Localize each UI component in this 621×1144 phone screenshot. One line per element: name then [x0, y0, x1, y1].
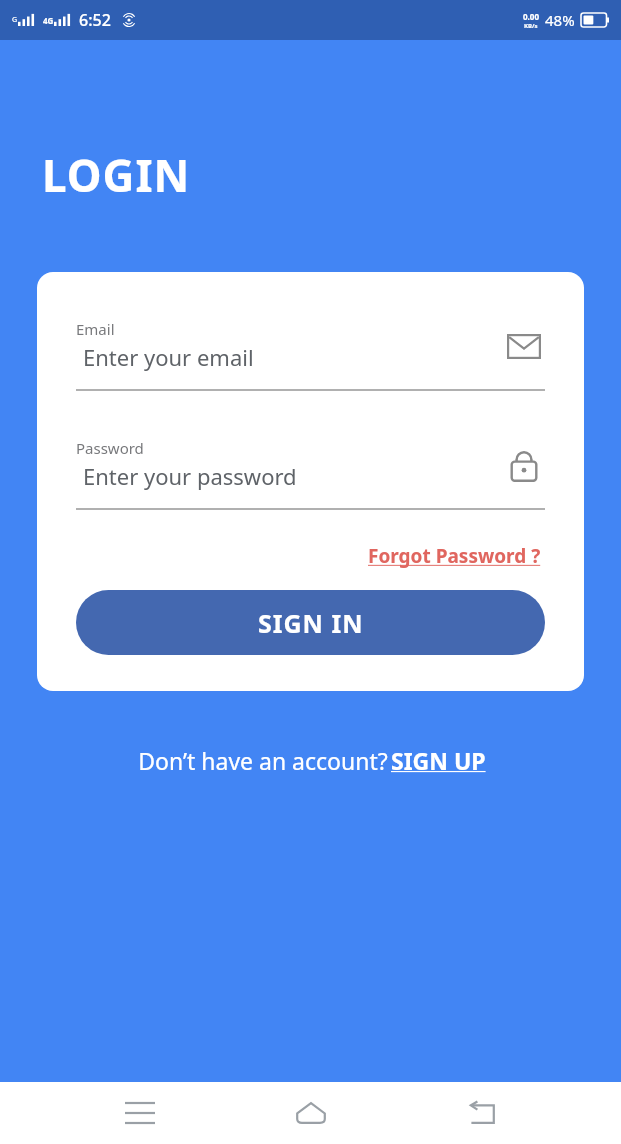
staticText: 6:52	[79, 9, 111, 31]
staticText: Enter your email	[83, 342, 254, 372]
button[interactable]: SIGN UP	[391, 745, 486, 776]
button[interactable]: Recent apps	[109, 1082, 171, 1144]
staticText: 4G	[43, 15, 54, 26]
staticText: Enter your password	[83, 461, 297, 491]
button[interactable]: Home	[280, 1082, 342, 1144]
button[interactable]: Forgot Password ?	[364, 539, 545, 573]
button[interactable]: Email	[76, 319, 545, 391]
button[interactable]: Password	[76, 438, 545, 510]
staticText: Password	[76, 438, 144, 458]
staticText: 48%	[545, 10, 575, 30]
staticText: LOGIN	[42, 145, 191, 205]
button[interactable]: SIGN IN	[76, 590, 545, 655]
staticText: Don’t have an account?	[135, 745, 391, 776]
staticText: KB/s	[524, 22, 538, 30]
staticText: G	[12, 15, 18, 25]
staticText: SIGN IN	[258, 606, 364, 640]
button[interactable]: Back	[450, 1082, 512, 1144]
staticText: Email	[76, 319, 115, 339]
staticText: 0.00	[523, 11, 539, 22]
